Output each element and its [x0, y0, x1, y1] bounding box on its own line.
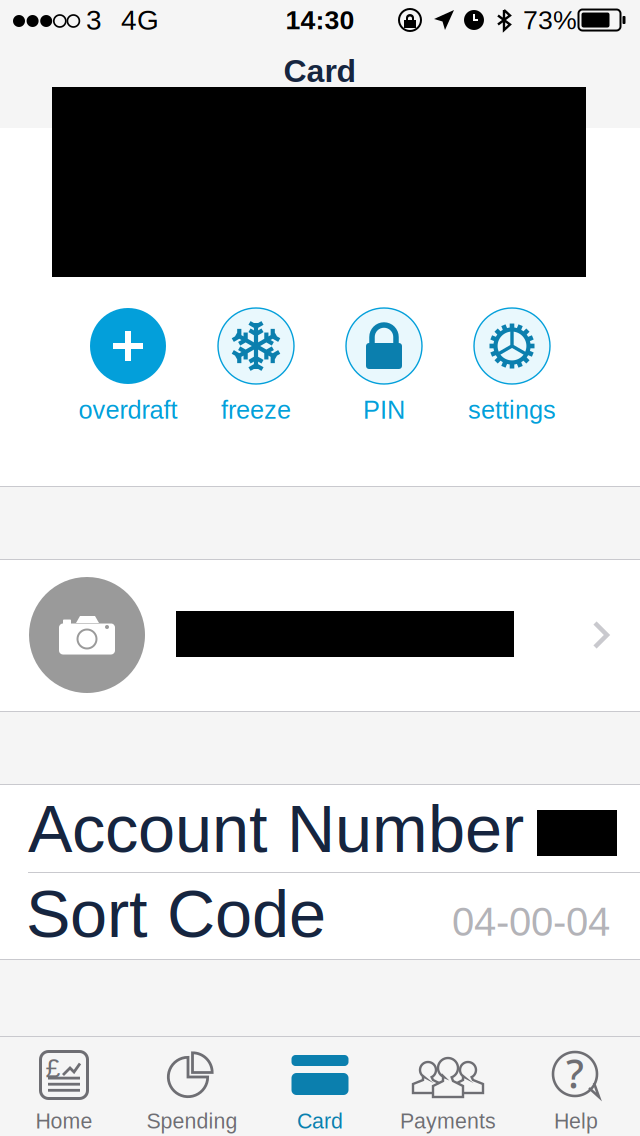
button[interactable]: Account Number: [0, 785, 640, 872]
staticText: Payments: [400, 1109, 496, 1133]
staticText: settings: [468, 396, 556, 424]
button[interactable]: settings: [448, 308, 576, 440]
button[interactable]: Sort Code: [0, 873, 640, 960]
staticText: PIN: [363, 396, 405, 424]
staticText: Sort Code: [26, 877, 326, 951]
staticText: Home: [35, 1109, 92, 1133]
staticText: 4G: [121, 4, 159, 36]
staticText: 14:30: [285, 5, 354, 35]
button[interactable]: PIN: [320, 308, 448, 440]
staticText: ?: [566, 1046, 584, 1099]
button[interactable]: Payments: [384, 1037, 512, 1136]
button[interactable]: ?: [512, 1037, 640, 1136]
button[interactable]: overdraft: [64, 308, 192, 440]
staticText: overdraft: [78, 396, 177, 424]
staticText: £: [45, 1053, 60, 1083]
staticText: Card: [297, 1109, 343, 1133]
staticText: 04-00-04: [452, 900, 610, 944]
staticText: Account Number: [28, 792, 524, 866]
button[interactable]: [0, 560, 640, 711]
button[interactable]: £: [0, 1037, 128, 1136]
staticText: Help: [554, 1109, 598, 1133]
button[interactable]: freeze: [192, 308, 320, 440]
staticText: 3: [86, 4, 102, 36]
staticText: freeze: [221, 396, 291, 424]
staticText: Spending: [146, 1109, 237, 1133]
staticText: Card: [283, 53, 356, 89]
button[interactable]: Spending: [128, 1037, 256, 1136]
button[interactable]: Card: [256, 1037, 384, 1136]
staticText: 73%: [523, 5, 577, 35]
